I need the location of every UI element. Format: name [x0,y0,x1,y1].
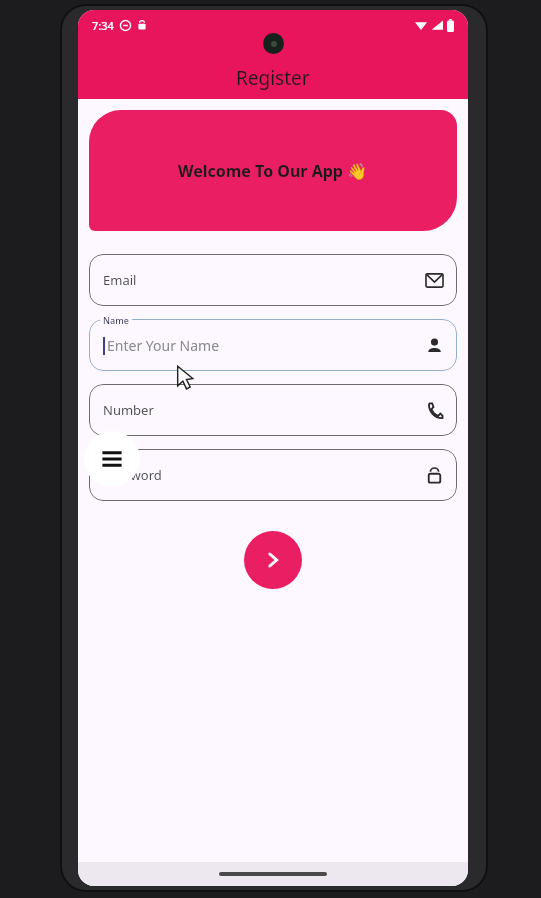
staticText: Name [103,314,129,326]
staticText: Password [103,466,162,484]
button[interactable]: Number [89,384,457,436]
button[interactable]: Enter Your Name [89,319,457,371]
staticText: Welcome To Our App 👋 [178,160,368,182]
staticText: Enter Your Name [107,336,220,355]
other: Password [426,467,443,484]
other: Name [426,337,443,354]
staticText: 7:34 [92,18,114,33]
button[interactable]: Password [89,449,457,501]
other: Phone number [426,402,443,419]
button[interactable]: Submit [244,531,302,589]
staticText: Email [103,271,137,289]
button[interactable]: Welcome To Our App 👋 [89,110,457,231]
other: Email [426,272,443,289]
button[interactable]: Menu [84,431,140,487]
staticText: Register [236,65,310,91]
staticText: Number [103,401,154,419]
button[interactable]: Email [89,254,457,306]
